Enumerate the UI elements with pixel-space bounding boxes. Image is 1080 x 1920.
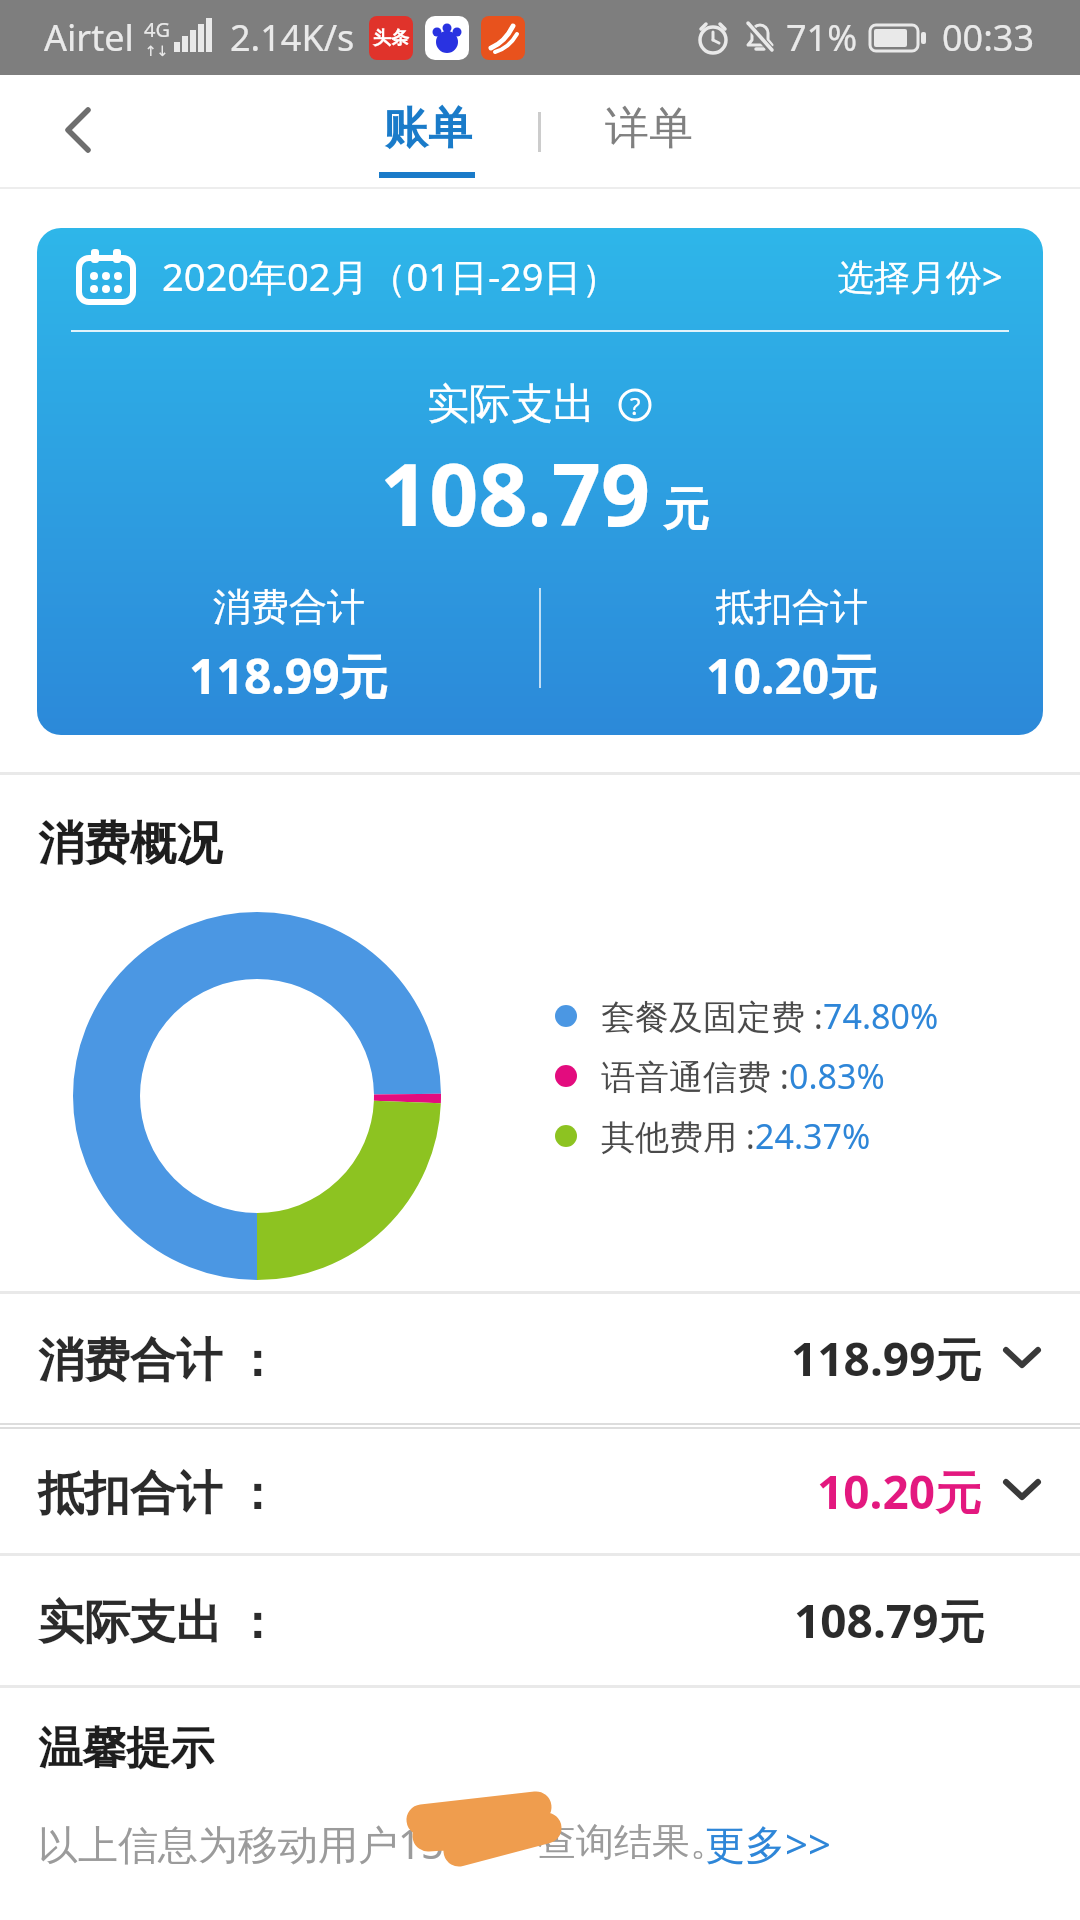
staticText: 查询结果。 bbox=[538, 1818, 728, 1866]
staticText: 74.80% bbox=[823, 993, 939, 1039]
button[interactable]: 实际支出 ： bbox=[0, 1556, 1080, 1685]
staticText: 详单 bbox=[605, 101, 693, 156]
staticText: 00:33 bbox=[942, 13, 1035, 62]
staticText: 元 bbox=[663, 481, 709, 539]
staticText: 账单 bbox=[384, 101, 472, 156]
button[interactable] bbox=[62, 108, 96, 152]
staticText: 其他费用 : bbox=[601, 1113, 755, 1159]
button[interactable]: 2020年02月（01日-29日） bbox=[37, 228, 1043, 735]
staticText: Airtel bbox=[44, 13, 134, 62]
button[interactable]: 选择月份> bbox=[838, 252, 1003, 301]
staticText: ? bbox=[630, 389, 641, 422]
staticText: 118.99元 bbox=[189, 643, 388, 709]
staticText: 以上信息为移动用户158**** bbox=[38, 1816, 555, 1871]
staticText: 10.20元 bbox=[706, 643, 878, 709]
button[interactable]: 账单 bbox=[365, 75, 490, 189]
staticText: 头条 bbox=[373, 27, 409, 50]
staticText: 2020年02月（01日-29日） bbox=[162, 250, 620, 302]
staticText: 语音通信费 : bbox=[601, 1053, 789, 1099]
staticText: 实际支出 bbox=[427, 378, 595, 431]
staticText: 71% bbox=[786, 13, 858, 62]
staticText: 108.79 bbox=[380, 434, 651, 551]
button[interactable]: 详单 bbox=[586, 75, 711, 189]
staticText: 套餐及固定费 : bbox=[601, 993, 823, 1039]
staticText: 2.14K/s bbox=[230, 13, 355, 62]
staticText: 消费合计 bbox=[213, 583, 365, 631]
button[interactable]: 消费合计 ： bbox=[0, 1294, 1080, 1423]
staticText: 24.37% bbox=[755, 1113, 871, 1159]
staticText: 抵扣合计 ： bbox=[38, 1460, 280, 1523]
staticText: 实际支出 ： bbox=[38, 1589, 280, 1652]
staticText: 抵扣合计 bbox=[716, 583, 868, 631]
staticText: 10.20元 bbox=[817, 1460, 982, 1523]
staticText: 消费合计 ： bbox=[38, 1327, 280, 1390]
staticText: 118.99元 bbox=[791, 1327, 982, 1390]
button[interactable]: 抵扣合计 ： bbox=[0, 1429, 1080, 1553]
staticText: 消费概况 bbox=[38, 815, 222, 873]
staticText: 温馨提示 bbox=[38, 1721, 214, 1776]
staticText: 108.79元 bbox=[794, 1589, 985, 1652]
staticText: ↑↓ bbox=[145, 43, 169, 59]
staticText: 4G bbox=[144, 16, 170, 43]
button[interactable]: 更多>> bbox=[705, 1816, 831, 1871]
staticText: 0.83% bbox=[789, 1053, 885, 1099]
